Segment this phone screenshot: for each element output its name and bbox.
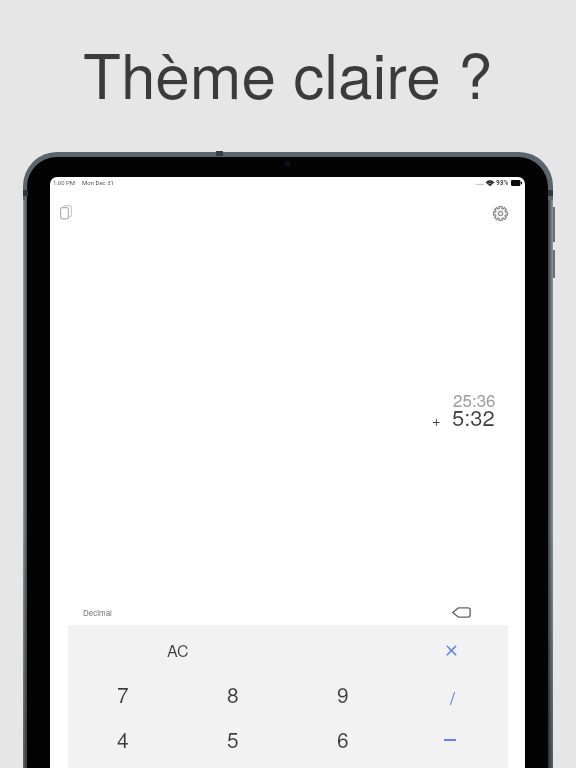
button[interactable]: Copy (50, 196, 83, 229)
button[interactable]: 8 (178, 671, 288, 716)
staticText: 25:36 (453, 387, 496, 411)
staticText: + (432, 409, 441, 430)
staticText: AC (167, 639, 189, 662)
button[interactable]: / (398, 671, 508, 716)
staticText: / (450, 684, 456, 710)
button[interactable]: 6 (288, 716, 398, 761)
staticText: 8 (227, 679, 239, 709)
button[interactable]: 5 (178, 716, 288, 761)
button[interactable]: Backspace (449, 602, 473, 622)
staticText: 9 (337, 679, 349, 709)
button[interactable]: Multiply (398, 625, 508, 676)
staticText: 1:00 PM (53, 179, 76, 186)
staticText: Thème claire ? (83, 28, 493, 117)
staticText: 6 (337, 724, 349, 754)
staticText: 5 (227, 724, 239, 754)
staticText: 7 (117, 679, 129, 709)
button[interactable]: AC (68, 625, 288, 676)
button[interactable]: 7 (68, 671, 178, 716)
staticText: 93% (496, 179, 509, 187)
staticText: Decimal (83, 607, 112, 618)
staticText: 4 (117, 724, 129, 754)
button[interactable]: Settings (484, 197, 517, 230)
staticText: 5:32 (452, 401, 495, 433)
button[interactable]: Subtract (398, 716, 508, 761)
staticText: Mon Dec 31 (82, 179, 114, 186)
button[interactable]: 4 (68, 716, 178, 761)
button[interactable]: 9 (288, 671, 398, 716)
